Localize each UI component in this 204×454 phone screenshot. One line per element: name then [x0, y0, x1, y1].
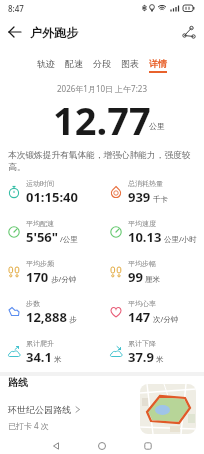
staticText: 8:47	[8, 3, 24, 14]
staticText: 10.13	[128, 228, 162, 246]
staticText: 2026年1月10日 上午7:23	[0, 83, 204, 94]
button[interactable]	[140, 384, 196, 434]
staticText: 12.77	[53, 94, 151, 146]
staticText: 分段	[93, 58, 111, 69]
staticText: 12,888	[26, 308, 67, 326]
staticText: 公里	[149, 121, 165, 131]
staticText: 运动时间	[26, 179, 54, 188]
button[interactable]	[144, 442, 152, 450]
staticText: 平均步频	[26, 259, 54, 268]
staticText: 37.9	[128, 348, 154, 366]
staticText: 厘米	[145, 275, 160, 284]
staticText: /公里	[60, 234, 78, 244]
staticText: 环世纪公园路线	[8, 404, 71, 415]
button[interactable]: 图表	[116, 58, 144, 74]
button[interactable]: 轨迹	[32, 58, 60, 74]
staticText: 千卡	[153, 195, 168, 204]
staticText: 已打卡 4 次	[8, 420, 49, 431]
staticText: 平均心率	[128, 299, 156, 308]
button[interactable]	[182, 25, 196, 39]
staticText: 170	[26, 268, 49, 286]
staticText: 步数	[26, 299, 40, 308]
staticText: 34.1	[26, 348, 52, 366]
staticText: 总消耗热量	[128, 179, 163, 188]
staticText: 户外跑步	[30, 25, 78, 40]
staticText: 详情	[149, 58, 167, 69]
staticText: 次/分钟	[153, 314, 179, 324]
staticText: 公里/小时	[164, 234, 197, 244]
staticText: 米	[156, 355, 164, 364]
button[interactable]: 详情	[144, 58, 172, 74]
staticText: 939	[128, 188, 151, 206]
staticText: 本次锻炼提升有氧体能，增强心肺能力，强度较 高。	[8, 150, 191, 172]
button[interactable]	[8, 25, 22, 39]
staticText: 平均步幅	[128, 259, 156, 268]
staticText: 路线	[8, 376, 28, 389]
staticText: 平均配速	[26, 219, 54, 228]
button[interactable]: 配速	[60, 58, 88, 74]
staticText: 01:15:40	[26, 188, 78, 206]
staticText: 5'56"	[26, 228, 58, 246]
staticText: 147	[128, 308, 151, 326]
staticText: 累计下降	[128, 339, 156, 348]
staticText: 轨迹	[37, 58, 55, 69]
button[interactable]	[98, 442, 106, 450]
staticText: 配速	[65, 58, 83, 69]
staticText: 步/分钟	[51, 274, 77, 284]
staticText: 平均速度	[128, 219, 156, 228]
button[interactable]	[52, 442, 60, 450]
staticText: 米	[54, 355, 62, 364]
button[interactable]: 环世纪公园路线	[8, 404, 81, 415]
staticText: 步	[69, 315, 77, 324]
staticText: 累计爬升	[26, 339, 54, 348]
button[interactable]: 分段	[88, 58, 116, 74]
staticText: 99	[128, 268, 143, 286]
staticText: 图表	[121, 58, 139, 69]
